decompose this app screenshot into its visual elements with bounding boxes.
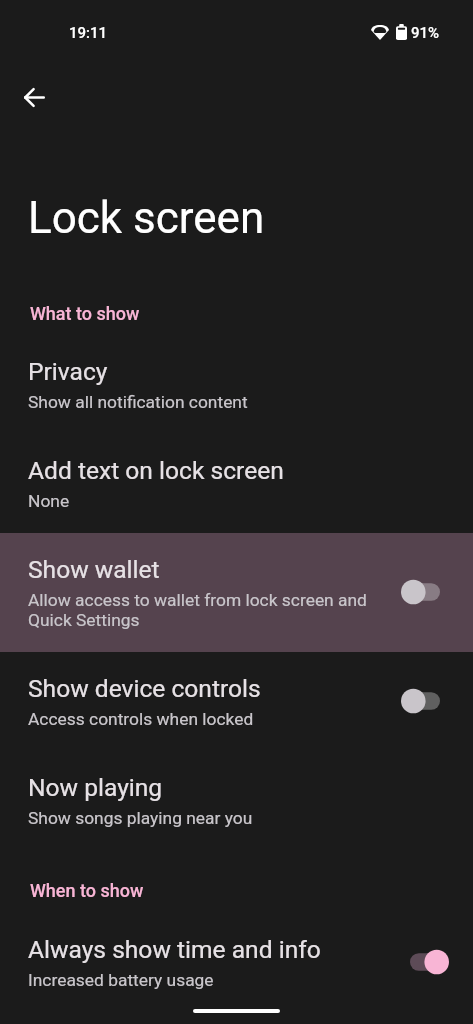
staticText: Lock screen bbox=[28, 192, 265, 244]
staticText: When to show bbox=[30, 880, 144, 901]
staticText: None bbox=[28, 491, 70, 511]
button[interactable]: Off bbox=[401, 579, 440, 605]
button[interactable]: On bbox=[410, 949, 449, 975]
button[interactable]: Privacy bbox=[0, 335, 473, 434]
staticText: Allow access to wallet from lock screen … bbox=[28, 590, 378, 630]
button[interactable]: Show wallet bbox=[0, 533, 473, 652]
staticText: Access controls when locked bbox=[28, 709, 254, 729]
staticText: 91% bbox=[411, 24, 440, 42]
button[interactable]: Always show time and info bbox=[0, 913, 473, 1012]
staticText: Show device controls bbox=[28, 674, 261, 703]
staticText: Show all notification content bbox=[28, 392, 248, 412]
staticText: What to show bbox=[30, 303, 140, 324]
staticText: Now playing bbox=[28, 773, 163, 802]
button[interactable]: Back bbox=[10, 73, 58, 121]
button[interactable]: Show device controls bbox=[0, 652, 473, 751]
staticText: Add text on lock screen bbox=[28, 456, 284, 485]
button[interactable]: Add text on lock screen bbox=[0, 434, 473, 533]
staticText: 19:11 bbox=[69, 24, 108, 42]
staticText: Show songs playing near you bbox=[28, 808, 253, 828]
button[interactable]: Off bbox=[401, 688, 440, 714]
staticText: Increased battery usage bbox=[28, 970, 214, 990]
staticText: Always show time and info bbox=[28, 935, 321, 964]
button[interactable]: Now playing bbox=[0, 751, 473, 850]
staticText: Privacy bbox=[28, 357, 108, 386]
staticText: Show wallet bbox=[28, 555, 160, 584]
